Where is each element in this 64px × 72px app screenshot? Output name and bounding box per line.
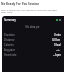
staticText: Distance <box>4 38 15 42</box>
staticText: -- bpm <box>53 53 61 57</box>
staticText: Calories <box>4 43 14 47</box>
button[interactable]: Distance <box>4 37 61 42</box>
staticText: No data yet <box>4 25 61 29</box>
staticText: Duration <box>4 33 15 37</box>
button[interactable]: Avg pace <box>4 47 61 52</box>
staticText: Avg pace <box>4 48 16 52</box>
button[interactable]: Calories <box>4 42 61 47</box>
button[interactable]: Summary <box>4 17 61 22</box>
staticText: --:-- <box>56 48 61 52</box>
staticText: Start a Ready For You session to see you… <box>1 8 62 14</box>
staticText: 0.0 km <box>52 38 61 42</box>
button[interactable]: Heart rate <box>4 52 61 57</box>
staticText: 0 kcal <box>54 43 61 47</box>
staticText: No Ready For You Session <box>1 2 63 6</box>
staticText: Summary <box>4 18 16 22</box>
staticText: Heart rate <box>4 53 17 57</box>
staticText: 0 min <box>54 33 61 37</box>
button[interactable]: Duration <box>4 32 61 37</box>
